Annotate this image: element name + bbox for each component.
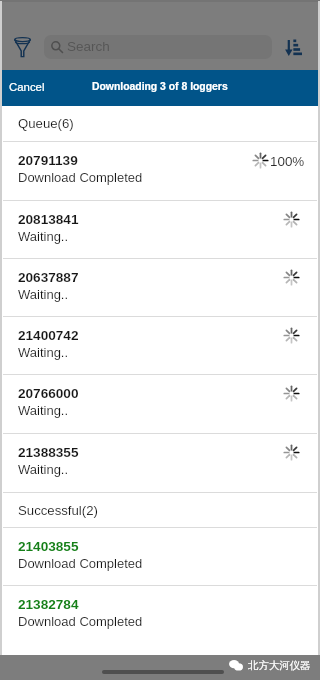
button[interactable]: 20637887 [0,259,320,316]
button[interactable]: Cancel [0,74,54,101]
staticText: Download Completed [18,170,143,185]
button[interactable]: Successful(2) [0,493,320,527]
staticText: 21403855 [18,539,79,554]
other: WeChat [229,660,243,671]
button[interactable]: Filter [10,32,35,61]
staticText: Downloading 3 of 8 loggers [92,81,228,93]
staticText: Download Completed [18,614,143,629]
staticText: Waiting.. [18,229,69,244]
button[interactable]: 21382784 [0,586,320,643]
button[interactable]: 21403855 [0,528,320,585]
staticText: 21388355 [18,445,79,460]
staticText: 20766000 [18,386,79,401]
button[interactable]: Search [44,35,272,59]
button[interactable]: 20766000 [0,375,320,433]
staticText: 20791139 [18,153,78,168]
staticText: 20637887 [18,270,79,285]
staticText: Download Completed [18,556,143,571]
button[interactable]: Sort [282,33,306,61]
staticText: Waiting.. [18,403,69,418]
button[interactable]: 20813841 [0,201,320,258]
staticText: Waiting.. [18,287,69,302]
staticText: Queue(6) [18,116,74,131]
staticText: 100% [270,154,305,169]
button[interactable]: 20791139 [0,142,320,200]
staticText: 21400742 [18,328,79,343]
staticText: 21382784 [18,597,79,612]
button[interactable]: Queue(6) [0,106,320,141]
staticText: Successful(2) [18,503,98,518]
staticText: Search [67,39,110,54]
staticText: 20813841 [18,212,79,227]
staticText: Waiting.. [18,345,69,360]
staticText: Waiting.. [18,462,69,477]
staticText: Cancel [9,81,45,94]
button[interactable]: 21388355 [0,434,320,492]
button[interactable]: 21400742 [0,317,320,374]
staticText: 北方大河仪器 [248,659,311,672]
